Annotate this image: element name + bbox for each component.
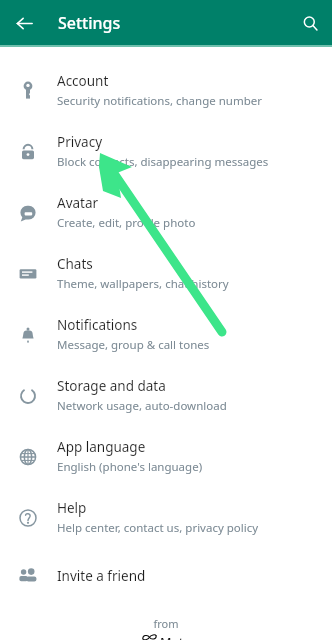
button[interactable]: Avatar bbox=[0, 182, 332, 243]
staticText: English (phone's language) bbox=[57, 459, 203, 475]
button[interactable]: App language bbox=[0, 426, 332, 487]
button[interactable]: Privacy bbox=[0, 121, 332, 182]
staticText: App language bbox=[57, 438, 146, 456]
staticText: Help bbox=[57, 499, 87, 517]
staticText: Security notifications, change number bbox=[57, 93, 262, 109]
button[interactable]: Invite a friend bbox=[0, 548, 332, 604]
button[interactable]: Search bbox=[295, 8, 326, 39]
staticText: Help center, contact us, privacy policy bbox=[57, 520, 259, 536]
staticText: Message, group & call tones bbox=[57, 337, 210, 353]
button[interactable]: Storage and data bbox=[0, 365, 332, 426]
staticText: Meta bbox=[160, 634, 191, 640]
staticText: Notifications bbox=[57, 316, 138, 334]
button[interactable]: Back bbox=[8, 7, 40, 39]
button[interactable]: Chats bbox=[0, 243, 332, 304]
staticText: Invite a friend bbox=[57, 567, 146, 585]
staticText: Storage and data bbox=[57, 377, 166, 395]
staticText: from bbox=[153, 616, 179, 631]
button[interactable]: Notifications bbox=[0, 304, 332, 365]
staticText: Create, edit, profile photo bbox=[57, 215, 196, 231]
staticText: Chats bbox=[57, 255, 93, 273]
staticText: Block contacts, disappearing messages bbox=[57, 154, 269, 170]
staticText: Settings bbox=[58, 12, 121, 34]
button[interactable]: Account bbox=[0, 60, 332, 121]
staticText: Network usage, auto-download bbox=[57, 398, 227, 414]
staticText: Theme, wallpapers, chat history bbox=[57, 276, 229, 292]
staticText: Account bbox=[57, 72, 109, 90]
staticText: Privacy bbox=[57, 133, 103, 151]
staticText: Avatar bbox=[57, 194, 99, 212]
button[interactable]: Help bbox=[0, 487, 332, 548]
